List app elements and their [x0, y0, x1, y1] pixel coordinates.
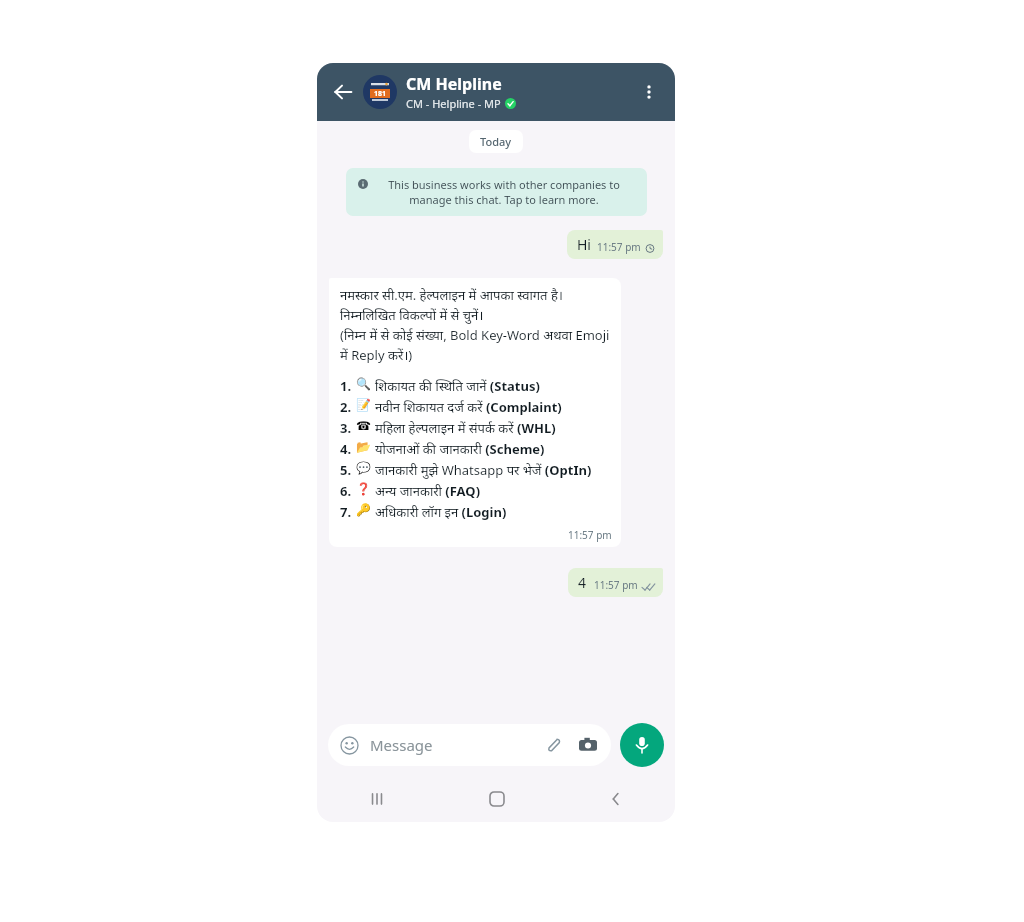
staticText: ❓ — [356, 482, 371, 496]
button[interactable]: More options — [633, 76, 665, 108]
button[interactable]: Today — [480, 134, 512, 149]
staticText: 7. — [340, 503, 352, 521]
staticText: 📂 — [356, 440, 371, 454]
button[interactable]: Back — [556, 776, 675, 822]
staticText: CM Helpline — [406, 73, 502, 95]
staticText: 6. — [340, 482, 352, 500]
button[interactable]: Camera — [577, 734, 599, 756]
staticText: 3. — [340, 419, 352, 437]
staticText: Hi — [577, 235, 591, 254]
staticText: 💬 — [356, 461, 371, 475]
staticText: 🔑 — [356, 503, 371, 517]
staticText: 📝 — [356, 398, 371, 412]
button[interactable]: This business works with other companies… — [346, 168, 647, 216]
button[interactable]: 4 — [568, 568, 663, 597]
button[interactable]: Attach — [542, 734, 564, 756]
staticText: 5. — [340, 461, 352, 479]
staticText: नमस्कार सी.एम. हेल्पलाइन में आपका स्वागत… — [340, 286, 612, 364]
staticText: 181 — [374, 89, 387, 98]
staticText: Message — [370, 735, 542, 755]
staticText: योजनाओं की जानकारी (Scheme) — [375, 440, 612, 458]
other: Emoji — [340, 736, 359, 755]
button[interactable]: Profile photo — [363, 75, 397, 109]
staticText: अन्य जानकारी (FAQ) — [375, 482, 612, 500]
staticText: This business works with other companies… — [373, 177, 635, 207]
button[interactable]: Back — [327, 76, 359, 108]
staticText: 4. — [340, 440, 352, 458]
button[interactable]: Hi — [567, 230, 663, 259]
button[interactable]: Emoji — [328, 724, 611, 766]
staticText: नवीन शिकायत दर्ज करें (Complaint) — [375, 398, 612, 416]
button[interactable]: CM Helpline — [406, 73, 633, 111]
staticText: शिकायत की स्थिति जानें (Status) — [375, 377, 612, 395]
button[interactable]: नमस्कार सी.एम. हेल्पलाइन में आपका स्वागत… — [329, 278, 621, 547]
button[interactable]: Home — [437, 776, 556, 822]
staticText: 2. — [340, 398, 352, 416]
staticText: 4 — [578, 573, 587, 592]
staticText: Today — [480, 134, 512, 149]
staticText: अधिकारी लॉग इन (Login) — [375, 503, 612, 521]
button[interactable]: Voice message — [620, 723, 664, 767]
staticText: 11:57 pm — [594, 578, 638, 592]
staticText: जानकारी मुझे Whatsapp पर भेजें (OptIn) — [375, 461, 612, 479]
staticText: 1. — [340, 377, 352, 395]
staticText: 11:57 pm — [597, 240, 641, 254]
button[interactable]: Recents — [317, 776, 437, 822]
staticText: 🔍 — [356, 377, 371, 391]
staticText: ☎️ — [356, 419, 371, 433]
staticText: महिला हेल्पलाइन में संपर्क करें (WHL) — [375, 419, 612, 437]
staticText: 11:57 pm — [568, 528, 612, 542]
staticText: CM - Helpline - MP — [406, 96, 501, 111]
